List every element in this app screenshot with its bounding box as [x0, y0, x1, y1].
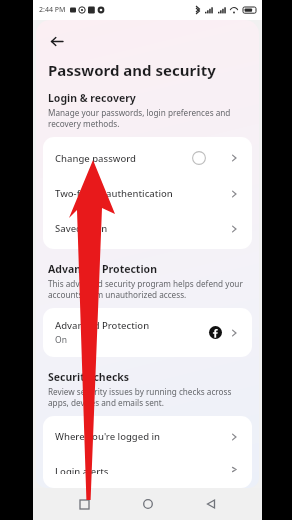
staticText: Saved login [55, 222, 108, 235]
staticText: 2:44 PM [39, 5, 66, 15]
staticText: Password and security [48, 60, 216, 80]
staticText: Security checks [48, 370, 130, 384]
staticText: Login alerts [55, 465, 109, 474]
staticText: Advanced Protection [48, 262, 157, 276]
staticText: Review security issues by running checks… [48, 386, 247, 408]
button[interactable]: Change password [43, 140, 252, 176]
staticText: Manage your passwords, login preferences… [48, 107, 247, 129]
button[interactable]: Back [198, 491, 224, 517]
staticText: Advanced Protection [55, 319, 150, 332]
button[interactable]: Where you're logged in [43, 419, 252, 454]
staticText: On [55, 334, 67, 346]
button[interactable]: Saved login [43, 211, 252, 246]
button[interactable]: Login alerts [43, 454, 252, 485]
button[interactable]: Back [45, 30, 67, 52]
staticText: Where you're logged in [55, 430, 161, 443]
staticText: Login & recovery [48, 91, 136, 105]
staticText: Two-factor authentication [55, 187, 173, 200]
button[interactable]: Recents [71, 491, 97, 517]
button[interactable]: Advanced Protection [43, 311, 252, 354]
staticText: Change password [55, 152, 136, 165]
button[interactable]: Two-factor authentication [43, 176, 252, 211]
staticText: This advanced security program helps def… [48, 278, 247, 300]
button[interactable]: Home [135, 491, 161, 517]
